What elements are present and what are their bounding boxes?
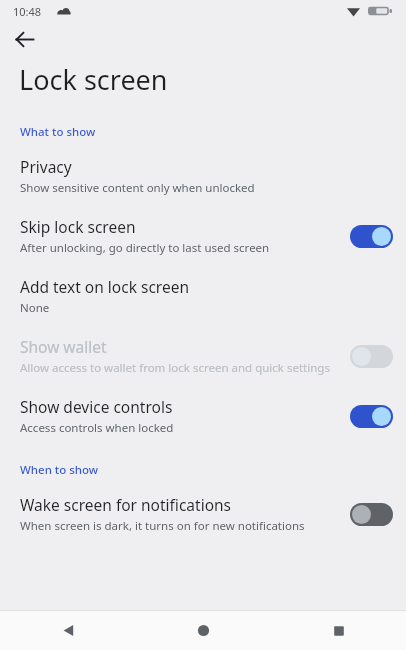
button[interactable]: Wake screen for notifications — [0, 484, 406, 544]
button[interactable]: Toggle — [348, 342, 394, 370]
staticText: When screen is dark, it turns on for new… — [20, 518, 305, 534]
button[interactable]: Toggle — [348, 222, 394, 250]
button[interactable]: Show device controls — [0, 386, 406, 446]
staticText: Skip lock screen — [20, 216, 136, 237]
button[interactable]: Privacy — [0, 146, 406, 206]
staticText: Access controls when locked — [20, 420, 174, 436]
button[interactable]: Skip lock screen — [0, 206, 406, 266]
staticText: What to show — [20, 124, 96, 140]
staticText: Add text on lock screen — [20, 276, 189, 297]
staticText: Show wallet — [20, 336, 107, 357]
button[interactable]: Toggle — [348, 402, 394, 430]
button[interactable]: Back — [0, 611, 136, 650]
button[interactable]: Home — [136, 611, 271, 650]
button[interactable]: Recents — [271, 611, 406, 650]
staticText: Privacy — [20, 156, 72, 177]
staticText: After unlocking, go directly to last use… — [20, 240, 270, 256]
staticText: Show sensitive content only when unlocke… — [20, 180, 255, 196]
staticText: None — [20, 300, 50, 316]
button[interactable]: Back — [7, 22, 41, 56]
button[interactable]: Show wallet — [0, 326, 406, 386]
button[interactable]: Add text on lock screen — [0, 266, 406, 326]
button[interactable]: Toggle — [348, 500, 394, 528]
staticText: Allow access to wallet from lock screen … — [20, 360, 330, 376]
staticText: Wake screen for notifications — [20, 494, 232, 515]
staticText: Show device controls — [20, 396, 173, 417]
staticText: Lock screen — [19, 61, 406, 98]
staticText: 10:48 — [13, 4, 42, 19]
staticText: When to show — [20, 462, 99, 478]
